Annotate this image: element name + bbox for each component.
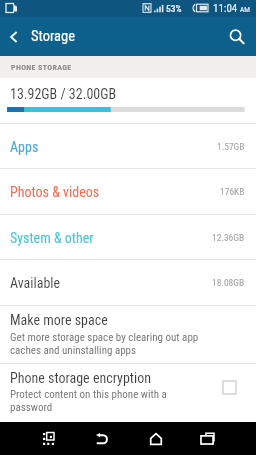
staticText: AM <box>240 5 250 14</box>
staticText: 13.92GB / 32.00GB <box>10 86 117 102</box>
staticText: 11:04 <box>213 2 238 15</box>
staticText: Storage <box>31 28 75 45</box>
staticText: Photos & videos <box>10 184 100 200</box>
staticText: Available <box>10 275 61 291</box>
button[interactable]: Home <box>142 425 169 452</box>
staticText: 12.36GB <box>212 232 245 243</box>
staticText: 1.57GB <box>217 141 245 152</box>
button[interactable]: Back <box>88 425 115 452</box>
button[interactable]: Available <box>0 260 256 305</box>
staticText: 18.08GB <box>212 277 245 288</box>
staticText: Phone storage encryption <box>10 370 151 386</box>
button[interactable]: Photos & videos <box>0 169 256 214</box>
staticText: System & other <box>10 230 94 246</box>
button[interactable]: Make more space <box>0 306 256 363</box>
button[interactable]: Toggle phone storage encryption <box>212 370 246 404</box>
staticText: Make more space <box>10 312 108 328</box>
staticText: 53% <box>166 3 182 14</box>
staticText: PHONE STORAGE <box>11 63 72 72</box>
button[interactable]: Search <box>218 17 256 56</box>
staticText: Apps <box>10 139 39 155</box>
button[interactable]: Apps <box>0 124 256 169</box>
button[interactable]: Navigate up <box>0 17 27 56</box>
button[interactable]: Phone storage encryption <box>0 364 256 422</box>
staticText: Protect content on this phone with a pas… <box>10 388 202 413</box>
staticText: Get more storage space by clearing out a… <box>10 331 230 356</box>
staticText: 176KB <box>220 186 245 197</box>
button[interactable]: System & other <box>0 215 256 260</box>
button[interactable]: Menu <box>35 425 62 452</box>
button[interactable]: Recent apps <box>194 425 221 452</box>
